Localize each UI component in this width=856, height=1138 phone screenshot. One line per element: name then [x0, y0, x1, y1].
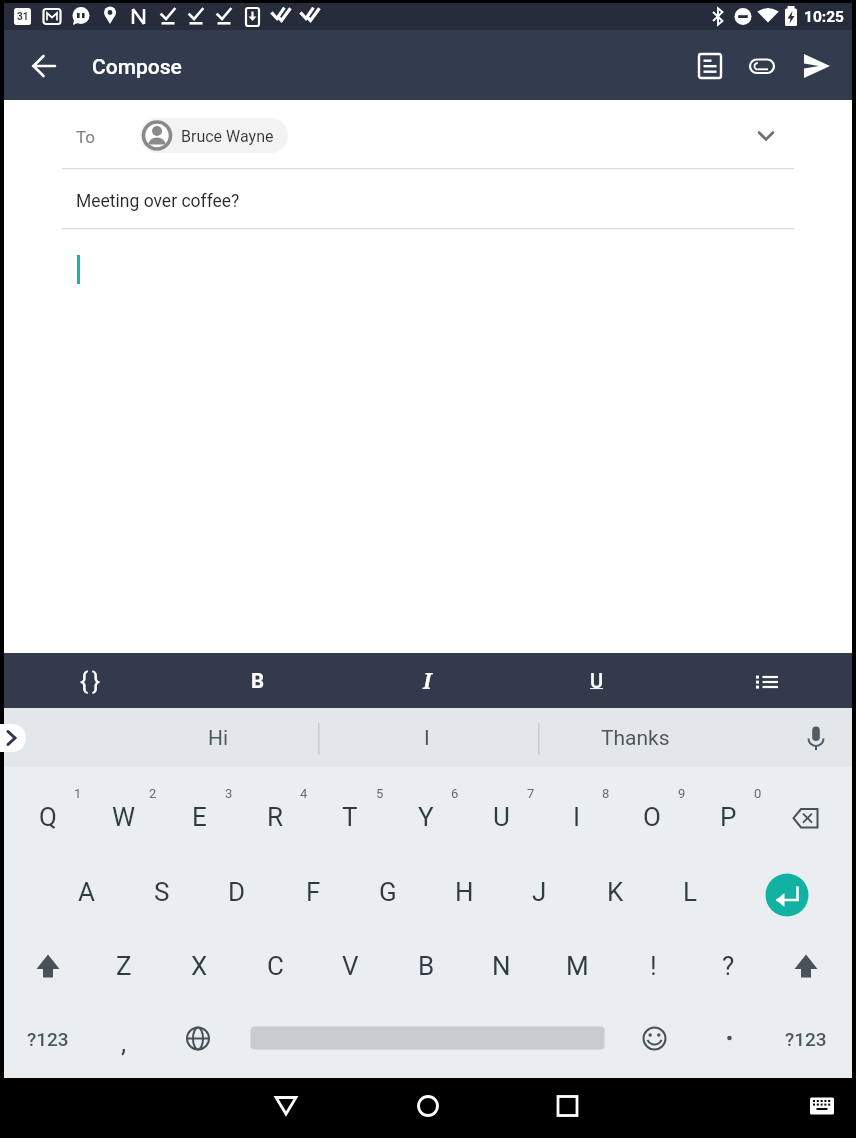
button[interactable]: N — [464, 930, 538, 1002]
staticText: B — [418, 951, 435, 981]
button[interactable] — [730, 112, 800, 160]
staticText: F — [306, 877, 321, 907]
staticText: S — [154, 877, 170, 907]
button[interactable] — [256, 1081, 316, 1133]
button[interactable] — [20, 42, 68, 90]
staticText: K — [607, 877, 624, 907]
button[interactable]: G — [351, 856, 425, 928]
button[interactable] — [67, 660, 111, 702]
staticText: 10:25 — [804, 8, 844, 26]
button[interactable] — [740, 660, 794, 702]
button[interactable]: ?123 — [769, 1009, 843, 1069]
staticText: A — [78, 877, 95, 907]
staticText: D — [228, 877, 246, 907]
button[interactable] — [686, 42, 734, 90]
button[interactable] — [792, 42, 840, 90]
button[interactable]: Hi — [123, 716, 313, 760]
staticText: 3 — [225, 786, 233, 801]
staticText: ?123 — [27, 1028, 69, 1050]
button[interactable]: W — [87, 781, 161, 853]
staticText: ! — [650, 951, 657, 981]
staticText: B — [251, 669, 265, 693]
button[interactable]: F — [276, 856, 350, 928]
staticText: W — [112, 802, 136, 832]
button[interactable]: B — [389, 930, 463, 1002]
staticText: 5 — [376, 786, 384, 801]
button[interactable] — [769, 932, 843, 1000]
button[interactable] — [161, 1009, 235, 1069]
staticText: Z — [116, 951, 132, 981]
button[interactable]: A — [49, 856, 123, 928]
button[interactable]: V — [313, 930, 387, 1002]
button[interactable]: B — [188, 659, 328, 703]
button[interactable] — [779, 713, 849, 763]
button[interactable]: ?123 — [11, 1009, 85, 1069]
button[interactable] — [692, 1009, 766, 1069]
button[interactable]: T — [313, 781, 387, 853]
staticText: R — [267, 802, 284, 832]
staticText: Compose — [92, 55, 182, 80]
staticText: 31 — [17, 11, 29, 23]
button[interactable]: , — [104, 1013, 144, 1073]
button[interactable]: C — [238, 930, 312, 1002]
button[interactable]: Z — [87, 930, 161, 1002]
button[interactable]: H — [427, 856, 501, 928]
button[interactable] — [250, 1019, 605, 1061]
button[interactable]: Q — [11, 781, 85, 853]
button[interactable]: P — [691, 781, 765, 853]
button[interactable] — [738, 42, 786, 90]
button[interactable] — [398, 1081, 458, 1133]
staticText: C — [267, 951, 284, 981]
staticText: 9 — [678, 786, 686, 801]
button[interactable] — [769, 783, 843, 851]
staticText: G — [379, 877, 397, 907]
staticText: E — [192, 802, 207, 832]
button[interactable] — [792, 1081, 852, 1133]
staticText: L — [683, 877, 698, 907]
button[interactable]: X — [162, 930, 236, 1002]
button[interactable]: D — [200, 856, 274, 928]
staticText: M — [566, 951, 589, 981]
staticText: } — [92, 667, 101, 695]
staticText: N — [492, 951, 511, 981]
button[interactable]: U — [464, 781, 538, 853]
button[interactable]: I — [332, 716, 522, 760]
staticText: U — [590, 669, 604, 692]
button[interactable]: J — [502, 856, 576, 928]
button[interactable]: Thanks — [540, 716, 730, 760]
staticText: T — [342, 802, 358, 832]
staticText: , — [121, 1028, 127, 1058]
button[interactable]: R — [238, 781, 312, 853]
button[interactable]: E — [162, 781, 236, 853]
staticText: I — [573, 802, 581, 832]
staticText: H — [455, 877, 474, 907]
staticText: Q — [39, 802, 57, 832]
staticText: 0 — [754, 786, 762, 801]
button[interactable]: Y — [389, 781, 463, 853]
button[interactable] — [617, 1009, 691, 1069]
staticText: ? — [722, 951, 735, 981]
staticText: 7 — [527, 786, 535, 801]
button[interactable] — [11, 932, 85, 1000]
button[interactable]: O — [615, 781, 689, 853]
button[interactable] — [766, 873, 808, 915]
button[interactable]: I — [357, 659, 497, 703]
staticText: V — [342, 951, 359, 981]
button[interactable]: I — [540, 781, 614, 853]
staticText: Hi — [208, 726, 229, 751]
staticText: To — [76, 127, 96, 147]
staticText: O — [643, 802, 661, 832]
button[interactable]: K — [578, 856, 652, 928]
staticText: Y — [418, 802, 434, 832]
button[interactable]: ? — [691, 930, 765, 1002]
button[interactable]: U — [527, 658, 667, 702]
button[interactable]: L — [653, 856, 727, 928]
button[interactable]: S — [125, 856, 199, 928]
button[interactable]: M — [540, 930, 614, 1002]
button[interactable]: ! — [616, 930, 690, 1002]
staticText: I — [424, 726, 430, 751]
staticText: Bruce Wayne — [181, 127, 274, 146]
button[interactable] — [537, 1081, 597, 1133]
button[interactable] — [140, 118, 288, 153]
staticText: ?123 — [785, 1028, 827, 1050]
